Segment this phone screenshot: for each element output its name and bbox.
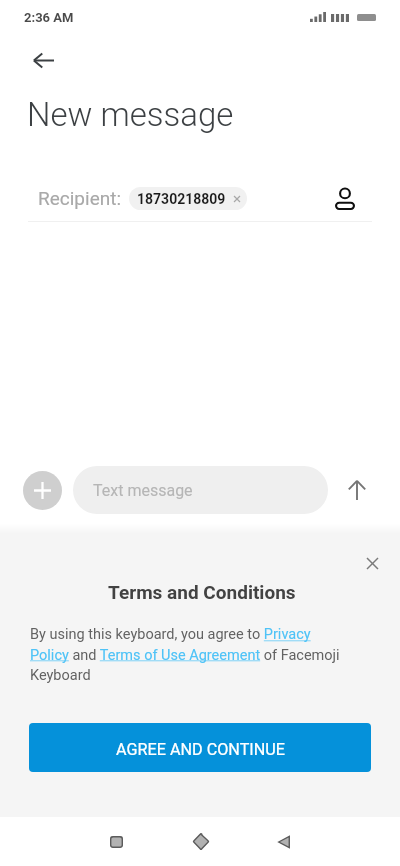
button[interactable]: Text message bbox=[73, 466, 328, 514]
button[interactable]: AGREE AND CONTINUE bbox=[29, 723, 371, 772]
button[interactable]: Home bbox=[179, 820, 222, 863]
staticText: 18730218809 bbox=[137, 191, 226, 207]
button[interactable]: Back bbox=[21, 38, 65, 82]
staticText: AGREE AND CONTINUE bbox=[116, 740, 285, 759]
staticText: New message bbox=[27, 95, 234, 134]
staticText: Text message bbox=[93, 481, 193, 500]
button[interactable]: Contacts bbox=[325, 179, 365, 219]
button[interactable]: Back bbox=[262, 820, 305, 863]
button[interactable]: Recent apps bbox=[95, 820, 138, 863]
button[interactable]: Send bbox=[339, 472, 375, 508]
staticText: Recipient: bbox=[38, 187, 122, 209]
staticText: 2:36 AM bbox=[24, 10, 74, 25]
staticText: By using this keyboard, you agree to Pri… bbox=[30, 626, 344, 684]
button[interactable]: 18730218809 bbox=[129, 187, 247, 210]
button[interactable]: Close bbox=[358, 549, 386, 577]
button[interactable]: Add attachment bbox=[23, 471, 62, 510]
staticText: Terms and Conditions bbox=[108, 581, 296, 603]
